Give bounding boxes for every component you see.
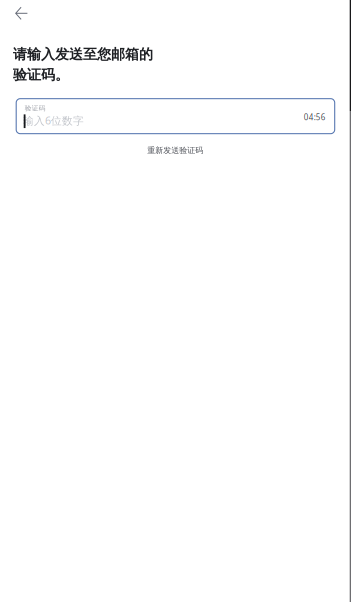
staticText: 验证码。	[13, 66, 69, 84]
button[interactable]: 重新发送验证码	[139, 141, 211, 159]
staticText: 验证码	[25, 104, 46, 112]
staticText: 重新发送验证码	[147, 145, 203, 155]
button[interactable]: 验证码，输入6位数字	[16, 99, 335, 134]
staticText: 输入6位数字	[23, 113, 84, 128]
staticText: 04:56	[304, 112, 326, 123]
staticText: 请输入发送至您邮箱的	[13, 46, 153, 63]
button[interactable]: Back	[0, 0, 40, 27]
